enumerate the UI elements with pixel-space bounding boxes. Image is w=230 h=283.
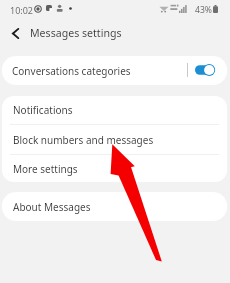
staticText: 10:02	[10, 4, 34, 16]
staticText: 43%	[195, 4, 212, 16]
button[interactable]: Conversations categories switch	[195, 63, 218, 77]
button[interactable]: Conversations categories	[2, 56, 227, 85]
staticText: Conversations categories	[12, 64, 131, 78]
staticText: About Messages	[13, 200, 91, 214]
staticText: More settings	[13, 162, 78, 176]
staticText: Notifications	[13, 103, 73, 117]
staticText: Block numbers and messages	[13, 133, 154, 147]
button[interactable]: Notifications	[2, 96, 227, 124]
button[interactable]: More settings	[2, 155, 227, 182]
button[interactable]: Back	[4, 22, 26, 44]
button[interactable]: Block numbers and messages	[2, 125, 227, 154]
staticText: Messages settings	[30, 26, 122, 40]
button[interactable]: About Messages	[2, 192, 227, 221]
